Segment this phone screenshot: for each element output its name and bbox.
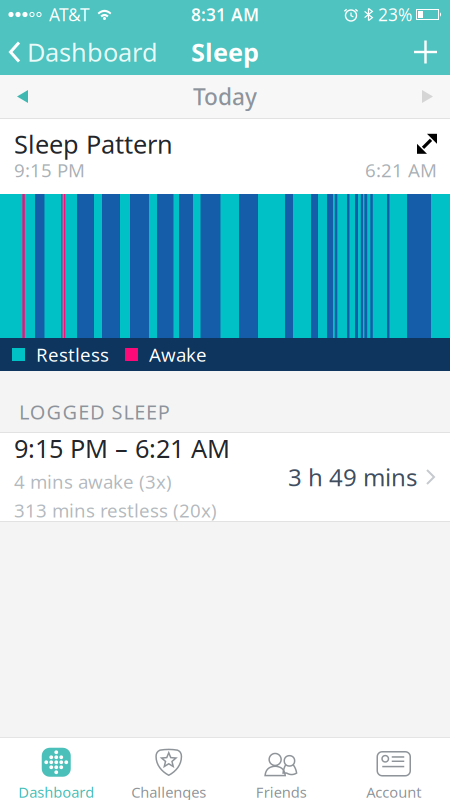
staticText: 8:31 AM: [191, 3, 259, 26]
button[interactable]: Friends: [225, 738, 337, 800]
staticText: Sleep Pattern: [14, 127, 173, 161]
button[interactable]: [422, 90, 450, 103]
staticText: 9:15 PM – 6:21 AM: [14, 431, 230, 465]
staticText: Dashboard: [27, 35, 158, 69]
staticText: Dashboard: [18, 782, 94, 800]
staticText: Account: [366, 782, 421, 800]
staticText: 9:15 PM: [14, 158, 85, 182]
staticText: Today: [193, 81, 257, 111]
staticText: 313 mins restless (20x): [14, 498, 217, 523]
staticText: Restless: [36, 342, 109, 367]
staticText: Awake: [149, 342, 207, 367]
button[interactable]: Challenges: [112, 738, 225, 800]
staticText: 6:21 AM: [365, 158, 437, 182]
staticText: 4 mins awake (3x): [14, 469, 172, 494]
button[interactable]: Account: [337, 738, 450, 800]
button[interactable]: Dashboard: [0, 35, 158, 69]
staticText: 3 h 49 mins: [288, 461, 417, 493]
staticText: Challenges: [131, 782, 206, 800]
staticText: LOGGED SLEEP: [19, 398, 170, 425]
staticText: 23%: [378, 3, 412, 26]
staticText: AT&T: [49, 3, 90, 26]
staticText: Friends: [256, 782, 307, 800]
button[interactable]: 9:15 PM – 6:21 AM: [0, 432, 450, 522]
button[interactable]: [0, 90, 28, 103]
button[interactable]: [417, 134, 437, 154]
staticText: Sleep: [191, 35, 259, 69]
button[interactable]: Dashboard: [0, 738, 112, 800]
button[interactable]: [414, 40, 450, 63]
